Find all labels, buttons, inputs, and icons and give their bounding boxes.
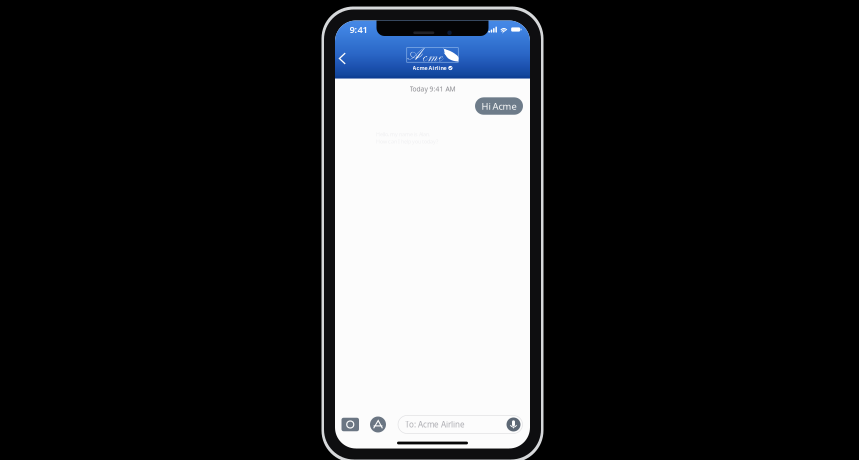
staticText: 9:41 (349, 23, 367, 36)
button[interactable]: Message field (398, 415, 522, 433)
staticText: e (439, 50, 443, 66)
staticText: c (423, 50, 427, 66)
button[interactable]: App Store (370, 416, 386, 432)
staticText: To: Acme Airline (405, 419, 465, 430)
staticText: Hi Acme (481, 100, 516, 112)
staticText: Today 9:41 AM (409, 84, 455, 93)
button[interactable]: Camera (341, 418, 359, 431)
button[interactable]: Back (335, 46, 353, 71)
staticText: m (428, 50, 437, 66)
staticText: Acme Airline (412, 64, 446, 72)
staticText: A (407, 45, 421, 66)
